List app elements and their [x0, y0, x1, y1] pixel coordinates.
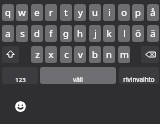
button[interactable]: d	[31, 25, 43, 42]
staticText: a	[5, 27, 11, 40]
staticText: rivinvaihto	[123, 75, 155, 84]
button[interactable]: x	[45, 46, 57, 63]
staticText: n	[106, 48, 112, 61]
button[interactable]: t	[60, 4, 72, 21]
button[interactable]: q	[2, 4, 14, 21]
button[interactable]: y	[74, 4, 86, 21]
staticText: q	[5, 6, 11, 19]
staticText: w	[18, 6, 26, 19]
button[interactable]: m	[118, 46, 130, 63]
staticText: s	[20, 27, 25, 40]
button[interactable]: 123	[2, 67, 38, 84]
button[interactable]: g	[60, 25, 72, 42]
staticText: m	[120, 48, 129, 61]
button[interactable]: i	[103, 4, 115, 21]
button[interactable]: e	[31, 4, 43, 21]
button[interactable]: f	[45, 25, 57, 42]
staticText: b	[92, 48, 98, 61]
staticText: 123	[15, 76, 26, 84]
button[interactable]: Backspace	[141, 46, 159, 63]
button[interactable]: rivinvaihto	[119, 67, 159, 84]
staticText: z	[35, 48, 40, 61]
staticText: t	[64, 6, 68, 19]
button[interactable]: r	[45, 4, 57, 21]
staticText: v	[78, 48, 83, 61]
button[interactable]: p	[132, 4, 144, 21]
staticText: ö	[135, 27, 141, 40]
staticText: x	[48, 48, 54, 61]
staticText: å	[150, 6, 156, 19]
button[interactable]: j	[89, 25, 101, 42]
button[interactable]: l	[118, 25, 130, 42]
button[interactable]: väli	[40, 67, 116, 84]
button[interactable]: å	[147, 4, 159, 21]
button[interactable]: Emoji	[15, 101, 26, 112]
staticText: y	[78, 6, 83, 19]
button[interactable]: s	[16, 25, 28, 42]
staticText: h	[77, 27, 83, 40]
staticText: r	[49, 6, 53, 19]
staticText: d	[34, 27, 40, 40]
staticText: l	[123, 27, 126, 40]
button[interactable]: n	[103, 46, 115, 63]
button[interactable]: v	[74, 46, 86, 63]
staticText: i	[108, 6, 111, 19]
button[interactable]: o	[118, 4, 130, 21]
staticText: c	[64, 48, 69, 61]
staticText: u	[92, 6, 98, 19]
staticText: e	[34, 6, 40, 19]
button[interactable]: k	[103, 25, 115, 42]
button[interactable]: b	[89, 46, 101, 63]
staticText: väli	[73, 75, 83, 84]
button[interactable]: u	[89, 4, 101, 21]
button[interactable]: Shift	[2, 46, 19, 63]
button[interactable]: z	[31, 46, 43, 63]
staticText: f	[49, 27, 53, 40]
button[interactable]: ö	[132, 25, 144, 42]
staticText: k	[106, 27, 112, 40]
button[interactable]: ä	[147, 25, 159, 42]
staticText: p	[135, 6, 141, 19]
button[interactable]: a	[2, 25, 14, 42]
staticText: o	[121, 6, 127, 19]
button[interactable]: h	[74, 25, 86, 42]
staticText: ä	[150, 27, 156, 40]
staticText: g	[63, 27, 69, 40]
button[interactable]: c	[60, 46, 72, 63]
button[interactable]: w	[16, 4, 28, 21]
staticText: j	[94, 27, 97, 40]
